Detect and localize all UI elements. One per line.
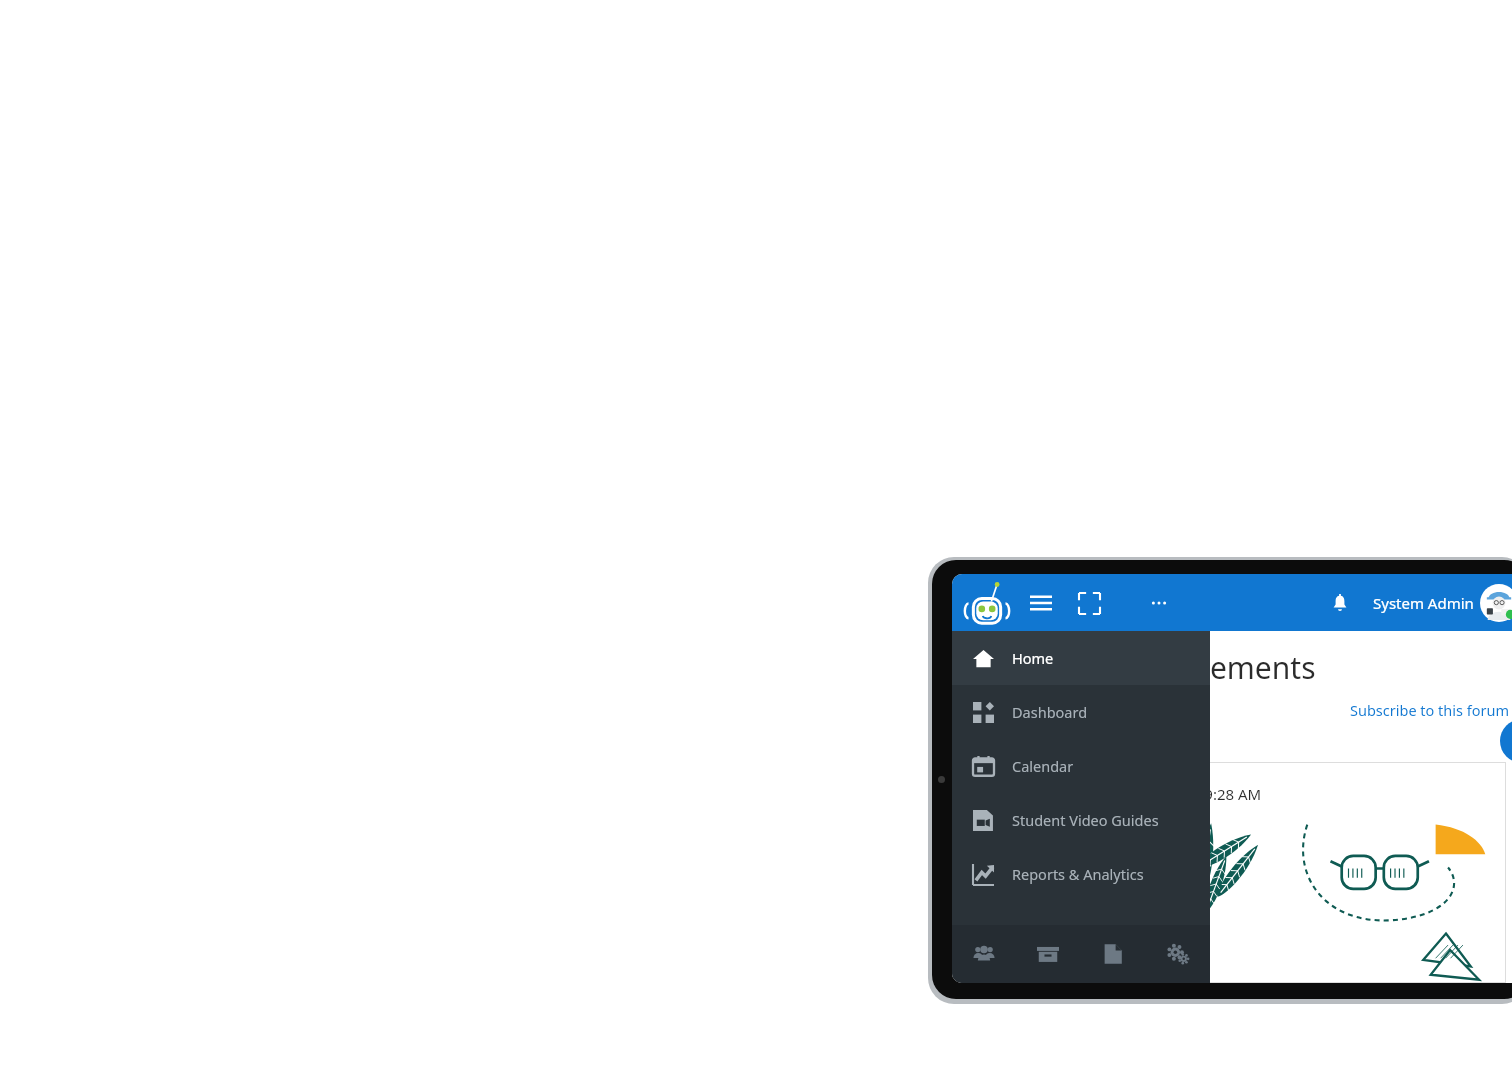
button[interactable]: Menu — [1024, 586, 1058, 620]
button[interactable]: Full screen — [1072, 586, 1106, 620]
staticText: Announcements — [1084, 647, 1316, 688]
staticText: Calendar — [1012, 756, 1074, 776]
button[interactable]: Calendar — [952, 739, 1210, 793]
staticText: Reports & Analytics — [1012, 864, 1144, 884]
button[interactable]: Reports & Analytics — [952, 847, 1210, 901]
button[interactable]: Home — [952, 631, 1210, 685]
button[interactable]: Archive — [1016, 925, 1080, 983]
button[interactable]: Settings — [1145, 925, 1210, 983]
button[interactable]: Subscribe to this forum — [1350, 700, 1510, 720]
button[interactable]: Files — [1080, 925, 1145, 983]
button[interactable]: Notifications — [1323, 586, 1357, 620]
button[interactable]: Home logo — [964, 580, 1010, 626]
staticText: Dashboard — [1012, 702, 1088, 722]
button[interactable]: Collapse panel — [1500, 719, 1512, 763]
staticText: System Admin — [1373, 593, 1474, 613]
button[interactable]: People — [952, 925, 1016, 983]
button[interactable]: Student Video Guides — [952, 793, 1210, 847]
staticText: Home — [1012, 648, 1054, 668]
staticText: Student Video Guides — [1012, 810, 1159, 830]
button[interactable]: More options — [1142, 586, 1176, 620]
button[interactable]: Dashboard — [952, 685, 1210, 739]
staticText: 27 June 2022, 9:28 AM — [1106, 784, 1262, 804]
button[interactable]: System Admin — [1373, 584, 1512, 622]
